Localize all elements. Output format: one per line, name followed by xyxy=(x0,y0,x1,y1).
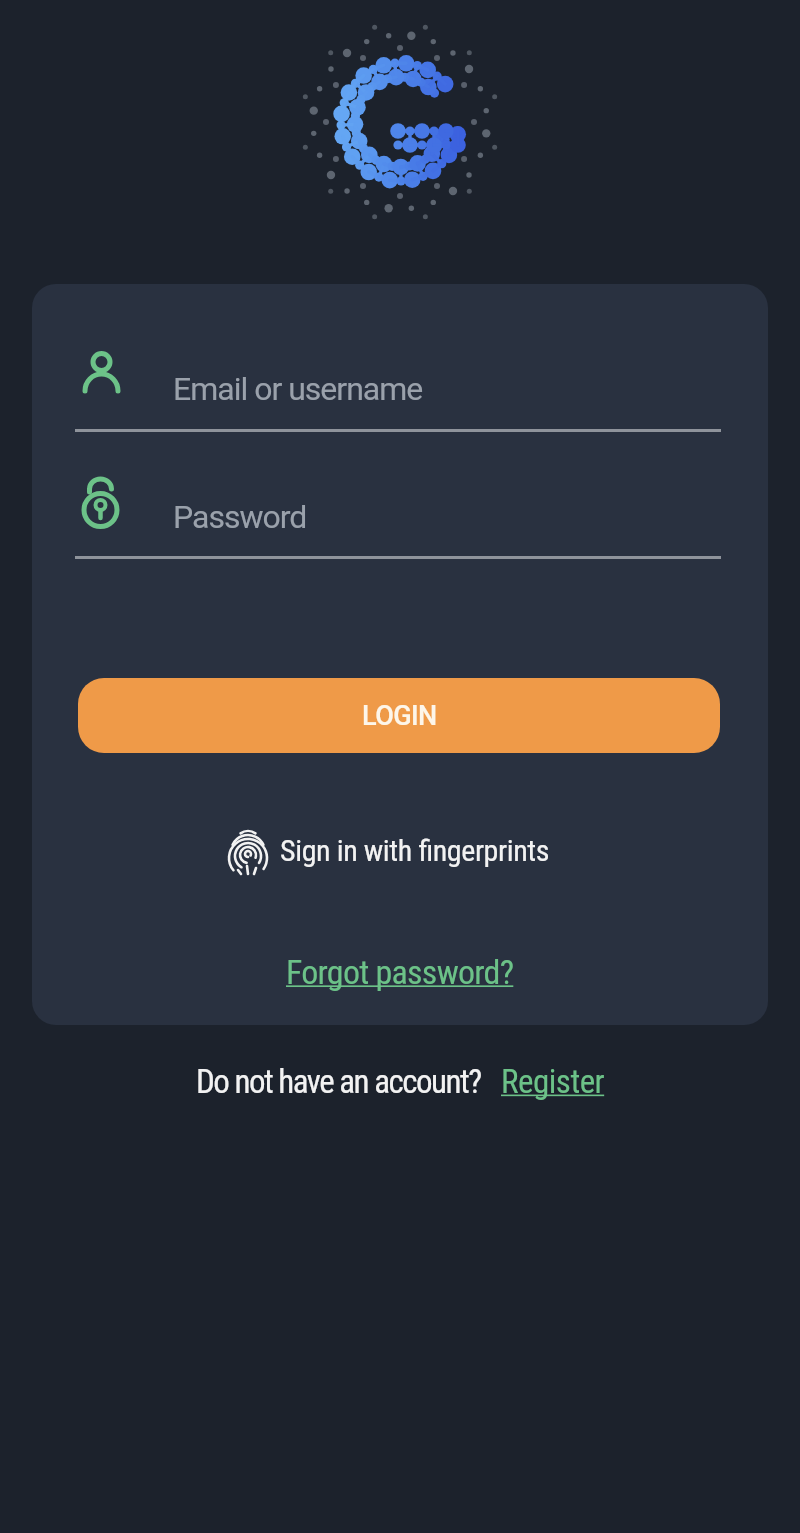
staticText: LOGIN xyxy=(362,700,437,732)
staticText: Sign in with fingerprints xyxy=(280,833,550,868)
button[interactable]: Password xyxy=(68,462,728,557)
button[interactable]: LOGIN xyxy=(78,678,720,753)
button[interactable]: Email or username xyxy=(68,334,728,430)
button[interactable]: Forgot password? xyxy=(286,952,514,992)
button[interactable]: Register xyxy=(501,1062,605,1101)
staticText: Do not have an account? xyxy=(196,1062,481,1101)
staticText: Email or username xyxy=(173,370,423,408)
button[interactable]: Sign in with fingerprints xyxy=(224,828,550,872)
staticText: Password xyxy=(173,498,307,536)
